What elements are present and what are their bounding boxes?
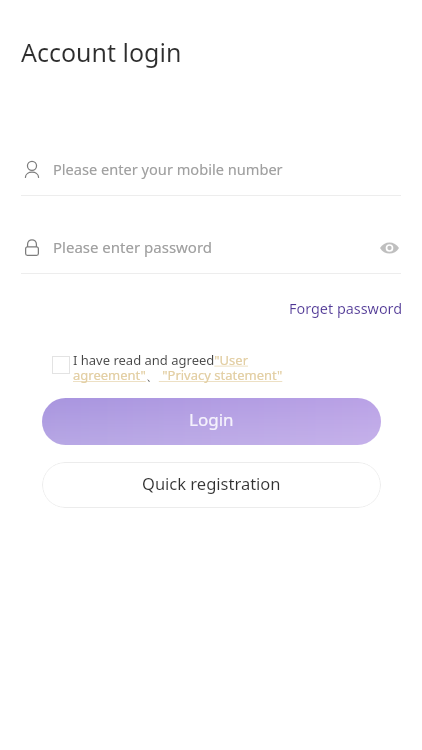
staticText: Quick registration <box>142 472 281 494</box>
staticText: Account login <box>21 35 182 69</box>
button[interactable]: Forget password <box>289 299 403 319</box>
button[interactable]: I have read and agreed"User agreement"、 … <box>73 351 286 384</box>
button[interactable]: Show password <box>376 235 402 261</box>
staticText: Login <box>189 408 234 431</box>
button[interactable]: Please enter your mobile number <box>25 156 400 182</box>
staticText: Please enter your mobile number <box>53 159 283 179</box>
button[interactable]: Quick registration <box>42 462 381 508</box>
button[interactable]: Please enter password <box>53 234 374 260</box>
button[interactable]: Login <box>42 398 381 445</box>
button[interactable]: Agree to terms <box>52 356 70 374</box>
staticText: Please enter password <box>53 237 213 257</box>
